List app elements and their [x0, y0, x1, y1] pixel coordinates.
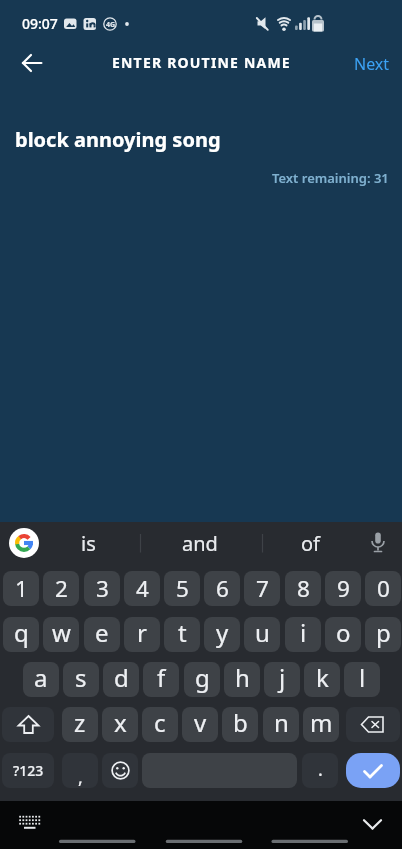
button[interactable]: ?123	[2, 753, 54, 788]
button[interactable]: p	[365, 617, 401, 652]
staticText: s	[75, 662, 87, 694]
staticText: u	[255, 617, 270, 649]
button[interactable]: .	[302, 753, 338, 788]
button[interactable]: is	[48, 529, 128, 557]
staticText: 4	[136, 573, 149, 604]
button[interactable]: s	[63, 662, 99, 697]
staticText: k	[316, 662, 329, 694]
button[interactable]: u	[244, 617, 280, 652]
button[interactable]: t	[164, 617, 200, 652]
button[interactable]: g	[184, 662, 220, 697]
staticText: 4G	[106, 20, 116, 30]
staticText: z	[74, 707, 86, 739]
staticText: ,	[78, 765, 83, 788]
button[interactable]: y	[204, 617, 240, 652]
staticText: 9	[337, 573, 350, 604]
button[interactable]: b	[222, 707, 258, 742]
button[interactable]: c	[142, 707, 178, 742]
staticText: block annoying song	[15, 126, 221, 153]
button[interactable]: r	[124, 617, 160, 652]
staticText: and	[182, 530, 218, 557]
staticText: r	[137, 617, 147, 649]
button[interactable]: j	[264, 662, 300, 697]
staticText: h	[235, 662, 250, 694]
button[interactable]: k	[304, 662, 340, 697]
staticText: 2	[55, 573, 68, 604]
button[interactable]	[102, 753, 138, 788]
staticText: v	[194, 707, 207, 739]
staticText: t	[178, 617, 187, 649]
staticText: x	[114, 707, 127, 739]
staticText: f	[157, 662, 166, 694]
staticText: p	[376, 617, 391, 649]
button[interactable]: and	[160, 529, 240, 557]
staticText: b	[233, 707, 248, 739]
button[interactable]: n	[263, 707, 299, 742]
button[interactable]: i	[285, 617, 321, 652]
staticText: 1	[15, 573, 28, 604]
button[interactable]: l	[344, 662, 380, 697]
button[interactable]: 1	[3, 571, 39, 606]
staticText: Text remaining: 31	[272, 169, 389, 187]
button[interactable]: m	[303, 707, 339, 742]
staticText: a	[34, 662, 48, 694]
button[interactable]: block annoying song	[15, 126, 221, 153]
staticText: Next	[354, 53, 390, 75]
button[interactable]	[346, 753, 400, 788]
button[interactable]	[363, 528, 393, 558]
button[interactable]	[355, 810, 389, 838]
button[interactable]: z	[62, 707, 98, 742]
staticText: 09:07	[22, 14, 58, 33]
staticText: y	[216, 617, 229, 649]
button[interactable]	[2, 707, 54, 742]
button[interactable]: 4	[124, 571, 160, 606]
button[interactable]: q	[3, 617, 39, 652]
staticText: g	[195, 662, 210, 694]
staticText: e	[95, 617, 109, 649]
button[interactable]: x	[102, 707, 138, 742]
button[interactable]: h	[224, 662, 260, 697]
staticText: 5	[176, 573, 189, 604]
button[interactable]: Next	[354, 53, 390, 75]
button[interactable]	[9, 528, 39, 558]
button[interactable]	[14, 48, 50, 78]
staticText: o	[336, 617, 351, 649]
button[interactable]: 0	[365, 571, 401, 606]
staticText: is	[81, 530, 96, 557]
staticText: 3	[96, 573, 109, 604]
button[interactable]: 8	[285, 571, 321, 606]
staticText: of	[301, 530, 320, 557]
button[interactable]: ,	[62, 753, 98, 788]
staticText: w	[52, 617, 71, 649]
button[interactable]	[346, 707, 400, 742]
staticText: n	[274, 707, 289, 739]
staticText: ?123	[13, 761, 44, 780]
button[interactable]: of	[270, 529, 350, 557]
button[interactable]: a	[23, 662, 59, 697]
button[interactable]: e	[84, 617, 120, 652]
button[interactable]: 3	[84, 571, 120, 606]
staticText: ENTER ROUTINE NAME	[112, 53, 291, 72]
button[interactable]: 5	[164, 571, 200, 606]
staticText: l	[359, 662, 366, 694]
button[interactable]: o	[325, 617, 361, 652]
staticText: j	[279, 662, 286, 694]
staticText: 0	[377, 573, 390, 604]
button[interactable]: 9	[325, 571, 361, 606]
button[interactable]: v	[182, 707, 218, 742]
button[interactable]: 6	[204, 571, 240, 606]
staticText: i	[300, 617, 307, 649]
button[interactable]: d	[103, 662, 139, 697]
button[interactable]: 7	[244, 571, 280, 606]
staticText: c	[154, 707, 166, 739]
button[interactable]: f	[143, 662, 179, 697]
staticText: m	[310, 707, 333, 739]
staticText: d	[114, 662, 129, 694]
staticText: 8	[297, 573, 310, 604]
button[interactable]	[13, 807, 45, 838]
staticText: 7	[256, 573, 269, 604]
button[interactable]: 2	[43, 571, 79, 606]
staticText: .	[318, 757, 323, 782]
button[interactable]: w	[43, 617, 79, 652]
